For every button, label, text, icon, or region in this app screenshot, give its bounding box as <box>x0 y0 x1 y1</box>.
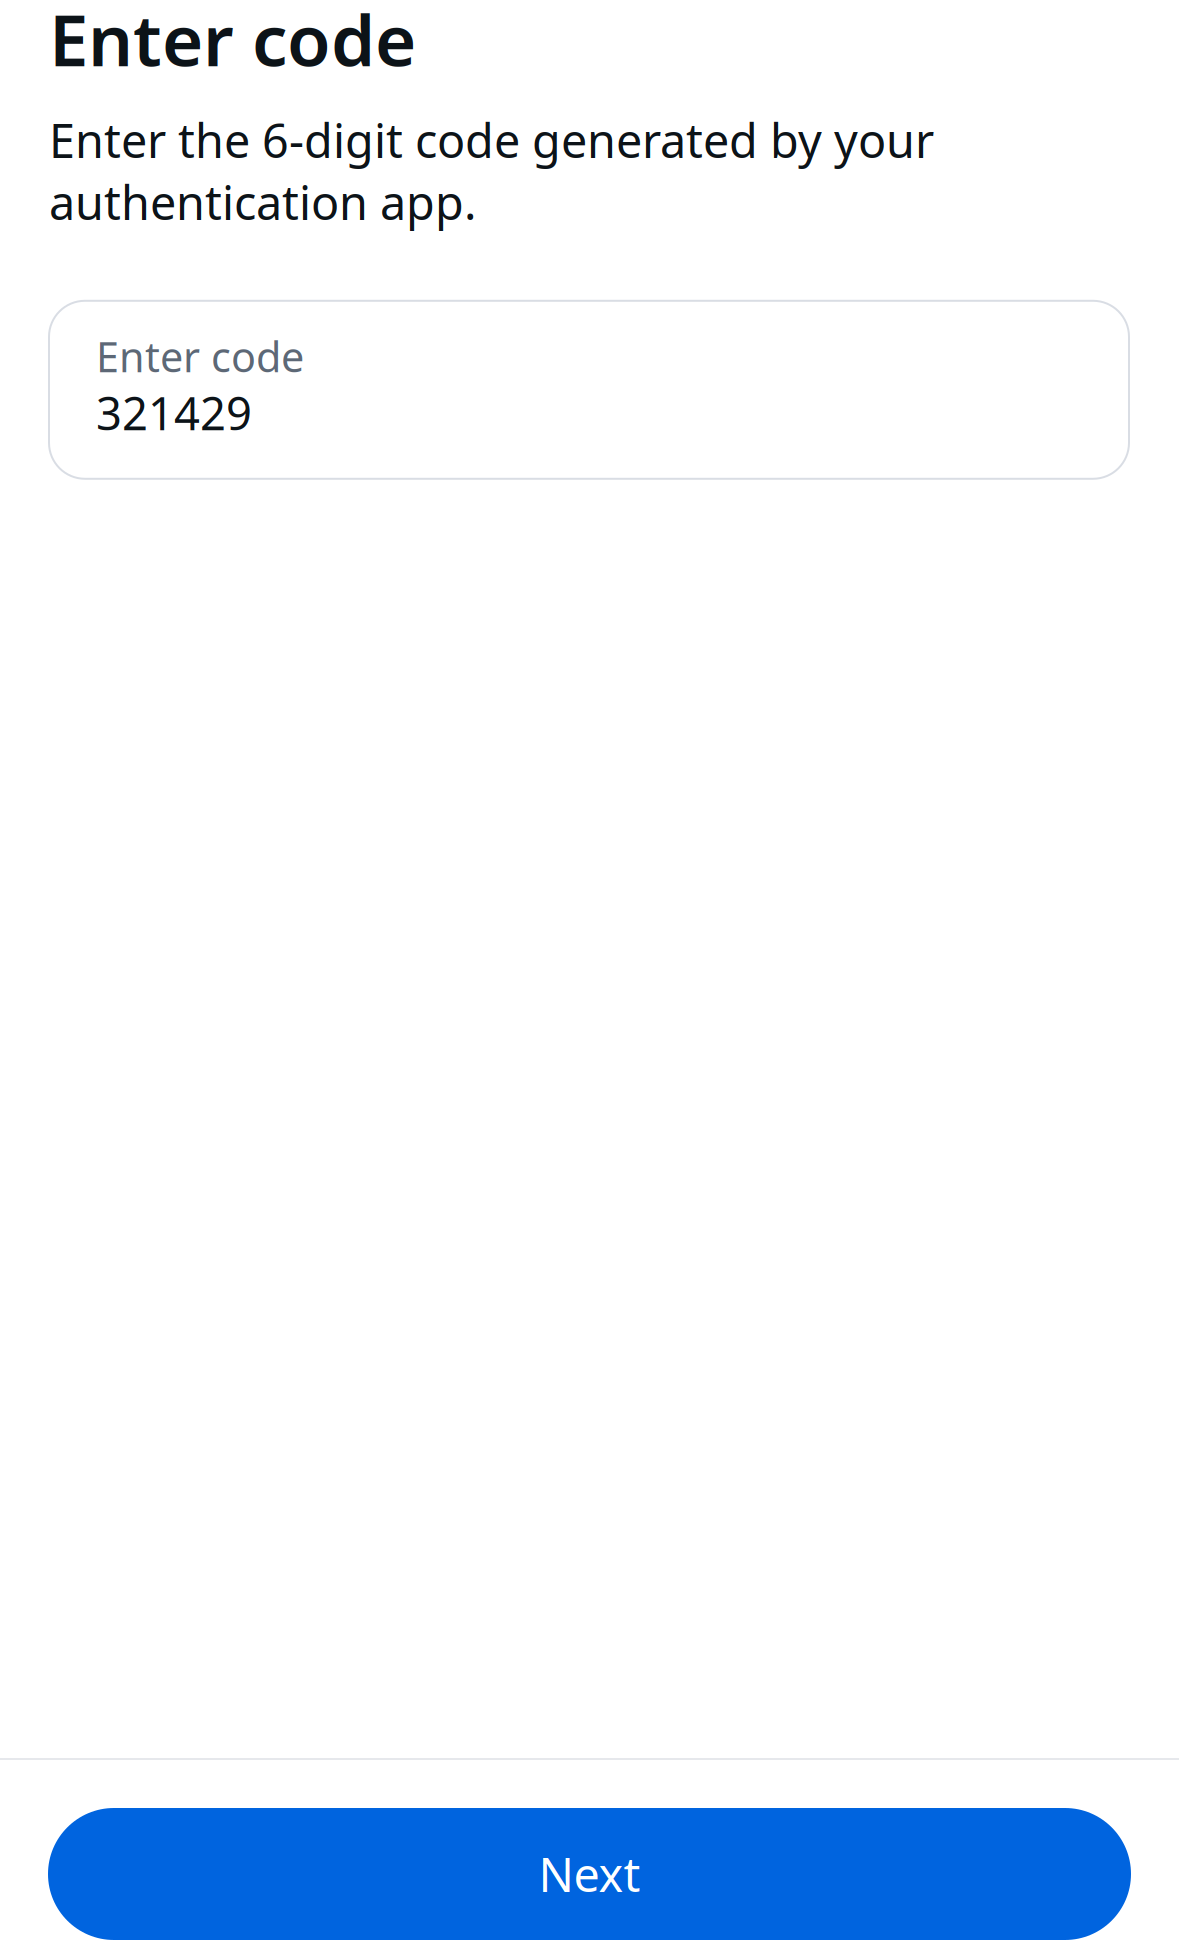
staticText: Enter code <box>96 329 304 384</box>
staticText: Enter code <box>49 0 416 86</box>
button[interactable]: Next <box>48 1808 1131 1940</box>
staticText: Next <box>538 1843 640 1905</box>
button[interactable]: Enter code <box>49 301 1129 479</box>
staticText: Enter the 6-digit code generated by your… <box>49 109 934 233</box>
staticText: 321429 <box>96 383 252 443</box>
